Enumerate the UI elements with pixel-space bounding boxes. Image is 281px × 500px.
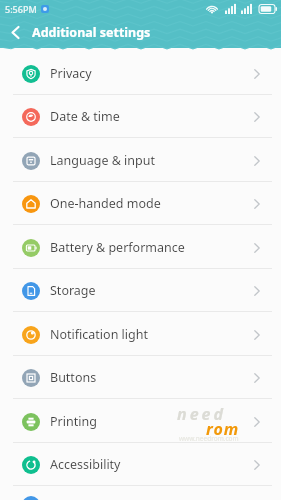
button[interactable]: Storage: [0, 269, 281, 312]
button[interactable]: Battery & performance: [0, 226, 281, 269]
button[interactable]: [0, 17, 30, 48]
staticText: Printing: [50, 413, 97, 430]
staticText: Privacy: [50, 65, 92, 82]
staticText: Language & input: [50, 152, 155, 169]
staticText: Additional settings: [32, 24, 151, 41]
button[interactable]: One-handed mode: [0, 182, 281, 225]
staticText: Buttons: [50, 369, 97, 386]
staticText: Accessibility: [50, 456, 121, 473]
button[interactable]: Printing: [0, 400, 281, 443]
staticText: 5:56PM: [5, 3, 37, 15]
staticText: need: [177, 403, 226, 425]
button[interactable]: Language & input: [0, 139, 281, 182]
button[interactable]: Accessibility: [0, 443, 281, 486]
staticText: Date & time: [50, 108, 120, 125]
staticText: www.needrom.com: [179, 434, 239, 443]
staticText: Notification light: [50, 326, 148, 343]
button[interactable]: Privacy: [0, 52, 281, 95]
staticText: One-handed mode: [50, 195, 161, 212]
button[interactable]: Notification light: [0, 313, 281, 356]
staticText: rom: [206, 418, 240, 440]
staticText: Storage: [50, 282, 96, 299]
button[interactable]: Buttons: [0, 356, 281, 399]
button[interactable]: Date & time: [0, 95, 281, 138]
staticText: Battery & performance: [50, 239, 185, 256]
